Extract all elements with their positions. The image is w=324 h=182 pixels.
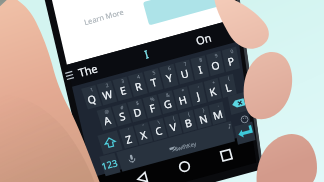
button[interactable]: Hand holding phone with SwiftKey keyboar… bbox=[0, 0, 324, 182]
